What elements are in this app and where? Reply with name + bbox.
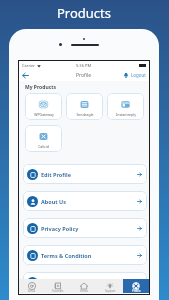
button[interactable]: Instantreply [107, 93, 144, 120]
button[interactable]: About Us [23, 191, 147, 211]
button[interactable]: Profile [123, 279, 149, 293]
button[interactable]: Sendeagle [66, 93, 103, 120]
button[interactable]: Support [97, 279, 123, 293]
staticText: Profile [132, 289, 141, 293]
button[interactable]: Calicid [25, 125, 62, 152]
button[interactable]: WPGateway [25, 93, 62, 120]
staticText: Contact Us [41, 279, 71, 286]
button[interactable]: Contact Us [23, 272, 147, 292]
staticText: Edit Profile [41, 171, 71, 178]
staticText: Terms & Condition [41, 252, 92, 259]
staticText: My Products [25, 84, 56, 91]
button[interactable]: Terms & Condition [23, 245, 147, 265]
button[interactable]: Email [19, 279, 45, 293]
button[interactable]: Home [71, 279, 97, 293]
button[interactable]: Back [19, 69, 32, 81]
staticText: Tutorials [52, 289, 64, 293]
staticText: Calicid [38, 144, 49, 149]
staticText: Instantreply [116, 112, 136, 117]
staticText: Logout [131, 72, 146, 78]
staticText: Privacy Policy [41, 225, 79, 232]
staticText: Sendeagle [76, 112, 94, 117]
staticText: 5:36 PM [76, 63, 92, 68]
staticText: Products [57, 4, 112, 22]
staticText: WPGateway [34, 112, 54, 117]
staticText: Support [105, 289, 116, 293]
button[interactable]: Edit Profile [23, 164, 147, 184]
button[interactable]: Logout [123, 72, 146, 78]
staticText: Home [80, 289, 88, 293]
staticText: Profile [76, 72, 92, 79]
button[interactable]: Privacy Policy [23, 218, 147, 238]
staticText: Email [28, 289, 36, 293]
staticText: About Us [41, 198, 67, 205]
button[interactable]: Tutorials [45, 279, 71, 293]
staticText: Carrier [22, 63, 36, 68]
